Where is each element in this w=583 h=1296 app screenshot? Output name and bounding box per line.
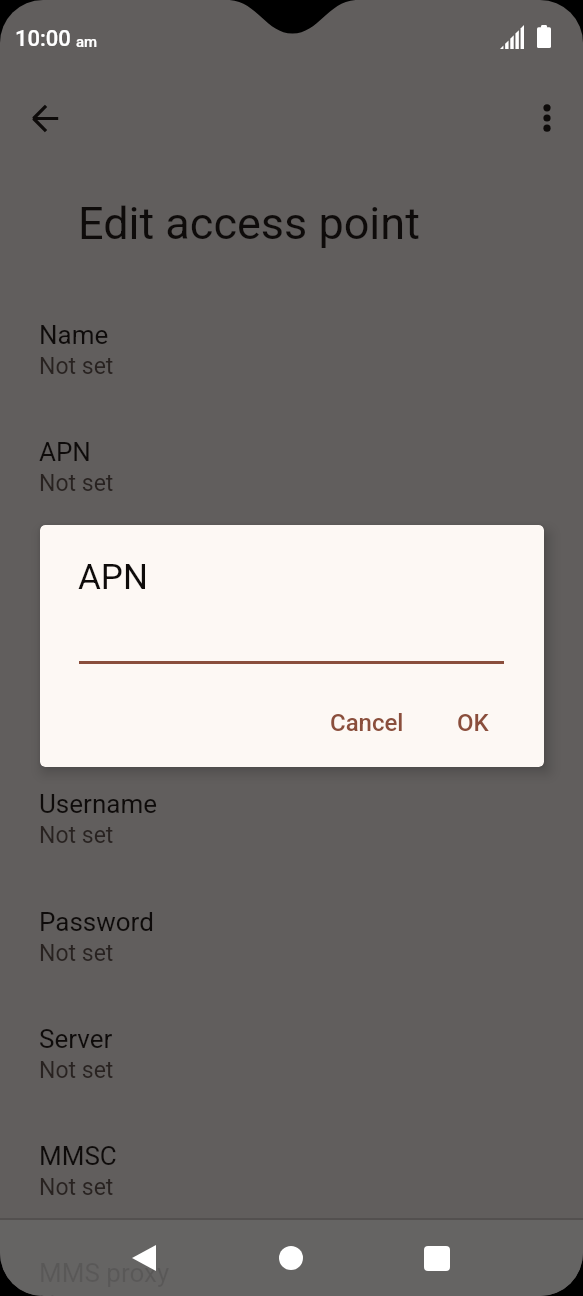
- staticText: Not set: [39, 1174, 114, 1201]
- button[interactable]: Username: [0, 779, 583, 896]
- button[interactable]: More options: [523, 94, 571, 142]
- button[interactable]: Recent apps: [408, 1229, 466, 1287]
- staticText: Cancel: [330, 709, 404, 737]
- staticText: MMSC: [39, 1141, 117, 1171]
- button[interactable]: Cancel: [309, 695, 425, 751]
- staticText: Username: [39, 789, 157, 819]
- staticText: Name: [39, 320, 109, 350]
- staticText: Not set: [39, 353, 114, 380]
- staticText: Proxy: [39, 555, 104, 585]
- button[interactable]: MMS proxy: [0, 1248, 583, 1296]
- staticText: Edit access point: [78, 197, 420, 250]
- button[interactable]: APN: [0, 427, 583, 544]
- button[interactable]: Proxy: [0, 545, 583, 662]
- staticText: Not set: [39, 940, 114, 967]
- staticText: APN: [39, 437, 91, 467]
- button[interactable]: Back: [115, 1229, 173, 1287]
- staticText: OK: [457, 709, 489, 737]
- button[interactable]: Server: [0, 1014, 583, 1131]
- button[interactable]: OK: [436, 695, 510, 751]
- staticText: Not set: [39, 1057, 114, 1084]
- button[interactable]: Name: [0, 310, 583, 427]
- staticText: Not set: [39, 470, 114, 497]
- staticText: Password: [39, 907, 154, 937]
- staticText: 10:00: [15, 26, 71, 52]
- button[interactable]: Home: [262, 1229, 320, 1287]
- staticText: am: [76, 33, 98, 51]
- button[interactable]: Navigate up: [20, 93, 71, 144]
- staticText: MMS proxy: [39, 1258, 170, 1288]
- button[interactable]: MMSC: [0, 1131, 583, 1248]
- staticText: APN: [78, 557, 148, 598]
- button[interactable]: Port: [0, 662, 583, 779]
- staticText: Server: [39, 1024, 113, 1054]
- staticText: Not set: [39, 705, 114, 732]
- staticText: Port: [39, 672, 89, 702]
- staticText: Not set: [39, 588, 114, 615]
- staticText: Not set: [39, 822, 114, 849]
- button[interactable]: Password: [0, 897, 583, 1014]
